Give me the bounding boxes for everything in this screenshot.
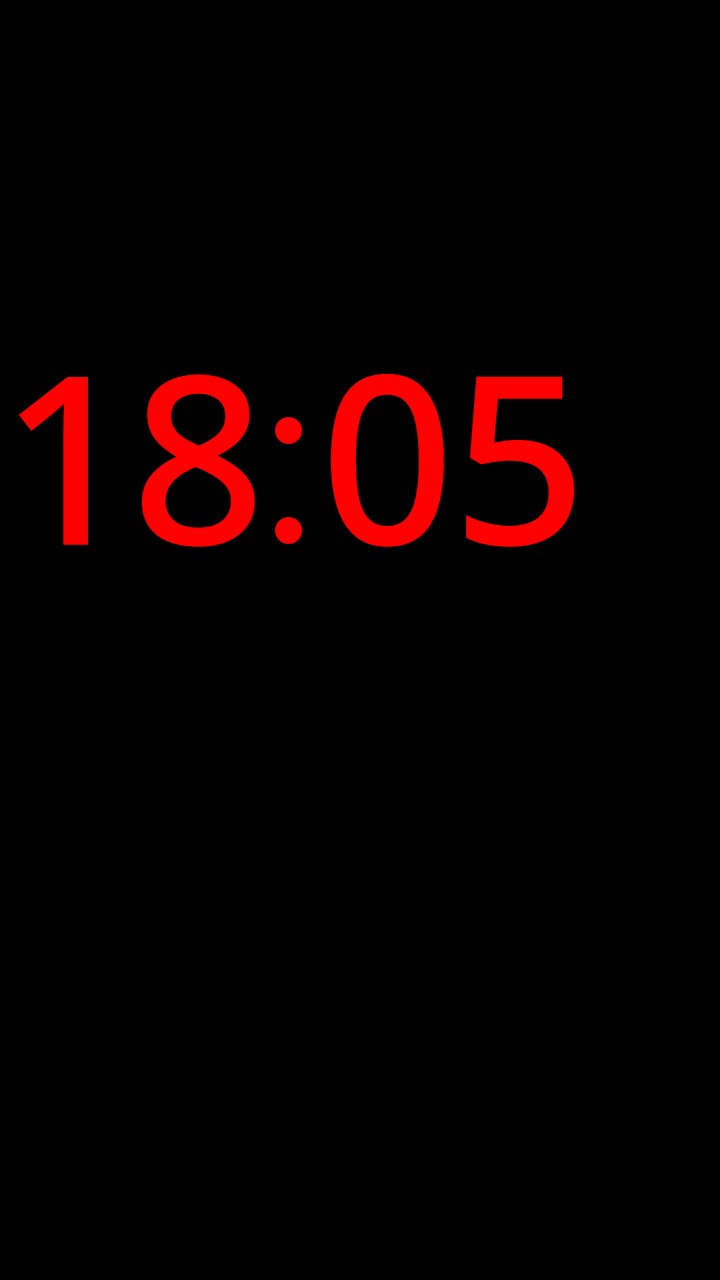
staticText: 0: [320, 294, 454, 614]
staticText: 8: [131, 294, 265, 614]
staticText: 1: [0, 294, 134, 614]
button[interactable]: Clock, 18:05: [0, 0, 720, 1280]
staticText: 5: [452, 294, 586, 614]
